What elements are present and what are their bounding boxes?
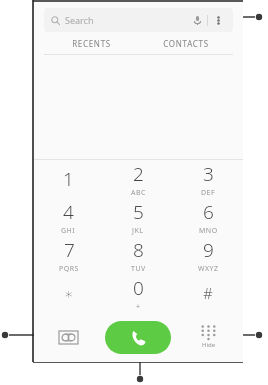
button[interactable]: More options [210,12,226,28]
button[interactable]: Call [105,321,171,354]
button[interactable]: Search [44,8,233,32]
button[interactable]: 9 [173,236,243,274]
staticText: TUV [131,264,146,274]
staticText: 5 [133,199,144,225]
staticText: MNO [199,226,218,236]
button[interactable]: Voice search [189,12,205,28]
staticText: WXYZ [198,264,219,274]
button[interactable]: ∗ [34,274,103,312]
staticText: # [203,283,213,303]
staticText: 4 [63,199,74,225]
button[interactable]: 0 [103,274,173,312]
staticText: GHI [61,226,76,236]
staticText: CONTACTS [163,38,209,49]
button[interactable]: 4 [34,198,103,236]
button[interactable]: 2 [103,160,173,198]
staticText: JKL [132,226,144,236]
button[interactable]: # [173,274,243,312]
button[interactable]: 8 [103,236,173,274]
staticText: DEF [201,188,216,198]
staticText: 1 [63,166,74,192]
button[interactable]: 6 [173,198,243,236]
staticText: Search [65,14,94,26]
staticText: 7 [64,237,75,263]
staticText: Hide [202,341,216,349]
staticText: 0 [133,275,144,301]
button[interactable]: RECENTS [44,32,138,54]
staticText: ABC [131,188,146,198]
staticText: + [136,302,141,312]
button[interactable]: Hide dialpad [173,312,243,362]
button[interactable]: CONTACTS [138,32,233,54]
button[interactable]: 5 [103,198,173,236]
staticText: 8 [133,237,144,263]
staticText: 2 [133,161,144,187]
staticText: 3 [203,161,214,187]
staticText: ∗ [64,285,74,302]
button[interactable]: Voicemail [34,312,103,362]
staticText: 6 [203,199,214,225]
staticText: RECENTS [72,38,111,49]
staticText: PQRS [59,264,79,274]
staticText: 9 [203,237,214,263]
button[interactable]: 3 [173,160,243,198]
button[interactable]: 7 [34,236,103,274]
button[interactable]: 1 [34,160,103,198]
